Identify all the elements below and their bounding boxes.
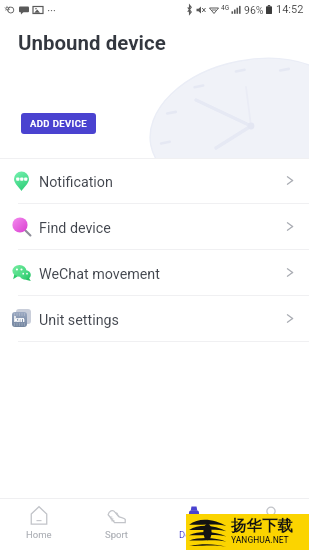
button[interactable]: Notification [0, 158, 309, 203]
staticText: Home [26, 529, 52, 540]
button[interactable]: km [0, 296, 309, 341]
staticText: Unbound device [18, 31, 166, 55]
button[interactable]: ADD DEVICE [21, 113, 96, 134]
staticText: 扬华下载 [231, 516, 293, 536]
staticText: Me [264, 529, 278, 540]
staticText: ADD DEVICE [30, 118, 88, 129]
staticText: km [14, 315, 25, 324]
staticText: Notification [39, 174, 113, 191]
button[interactable]: Me [232, 499, 309, 550]
button[interactable]: Device [155, 499, 232, 550]
staticText: 96% [244, 4, 264, 16]
staticText: WeChat movement [39, 266, 160, 283]
button[interactable]: Home [0, 499, 78, 550]
staticText: Device [179, 529, 208, 540]
staticText: 14:52 [276, 3, 304, 16]
staticText: 4G [221, 4, 230, 12]
staticText: Unit settings [39, 312, 119, 329]
staticText: YANGHUA.NET [231, 535, 289, 545]
staticText: Sport [105, 529, 128, 540]
button[interactable]: Find device [0, 204, 309, 249]
staticText: Find device [39, 220, 111, 237]
button[interactable]: WeChat movement [0, 250, 309, 295]
button[interactable]: Sport [78, 499, 155, 550]
